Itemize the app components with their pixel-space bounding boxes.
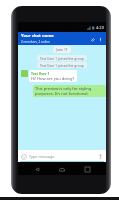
button[interactable]: Recents <box>81 163 93 175</box>
staticText: Test User 1 joined the group <box>40 56 84 60</box>
button[interactable]: Emoji <box>20 153 27 160</box>
staticText: This preview is only for styling purpose… <box>35 86 104 96</box>
staticText: Test User 1 joined the group <box>40 63 84 67</box>
button[interactable]: Attach <box>88 35 96 43</box>
staticText: 4:20 <box>96 25 104 30</box>
button[interactable]: Voice message <box>97 153 104 160</box>
button[interactable]: Home <box>56 163 68 175</box>
staticText: June 11 <box>56 47 68 52</box>
staticText: Test User 1 <box>31 71 50 76</box>
staticText: Your chat name <box>21 33 54 39</box>
staticText: Hi! How are you doing? <box>31 76 75 81</box>
staticText: 2 members, 2 online <box>21 40 50 44</box>
staticText: Type message <box>29 154 55 159</box>
button[interactable]: Back <box>31 163 43 175</box>
button[interactable]: More options <box>96 35 104 43</box>
